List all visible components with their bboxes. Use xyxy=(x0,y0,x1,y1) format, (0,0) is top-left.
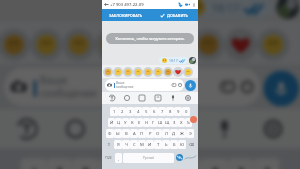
button[interactable]: Emoji xyxy=(127,28,160,61)
button[interactable]: 4 xyxy=(134,107,142,116)
button[interactable]: Back xyxy=(102,0,198,9)
button[interactable]: 2 xyxy=(118,107,126,116)
button[interactable]: Clipboard xyxy=(137,93,147,103)
button[interactable]: Э xyxy=(186,129,194,138)
button[interactable]: В xyxy=(122,129,130,138)
button[interactable]: 18:17 xyxy=(159,57,188,64)
button[interactable]: , xyxy=(115,153,122,163)
button[interactable]: ?123 xyxy=(103,153,114,163)
button[interactable]: 3 xyxy=(72,158,98,169)
button[interactable]: Voice input xyxy=(168,93,178,103)
button[interactable]: Emoji xyxy=(103,67,113,77)
button[interactable]: У xyxy=(122,118,129,127)
button[interactable]: Ф xyxy=(106,129,114,138)
button[interactable]: Коснитесь, чтобы загрузить историю. xyxy=(106,33,194,44)
button[interactable]: 8 xyxy=(202,158,228,169)
button[interactable]: ДОБАВИТЬ xyxy=(150,9,198,21)
button[interactable]: GIF xyxy=(160,113,192,145)
button[interactable]: Emoji xyxy=(133,67,143,77)
button[interactable]: Ч xyxy=(122,140,130,149)
button[interactable]: Д xyxy=(170,129,178,138)
button[interactable]: Voice message xyxy=(263,71,299,106)
button[interactable]: 2 xyxy=(46,158,72,169)
button[interactable]: Camera xyxy=(105,79,184,91)
button[interactable]: Emoji xyxy=(153,67,163,77)
button[interactable]: Г xyxy=(150,118,157,127)
button[interactable]: 6 xyxy=(150,107,158,116)
button[interactable]: Й xyxy=(108,118,115,127)
button[interactable]: 9 xyxy=(174,107,182,116)
button[interactable]: Settings xyxy=(183,93,193,103)
button[interactable]: Emoji xyxy=(0,28,30,61)
button[interactable]: 3 xyxy=(126,107,134,116)
button[interactable]: ЗАБЛОКИРОВАТЬ xyxy=(102,9,150,21)
button[interactable]: 8 xyxy=(166,107,174,116)
button[interactable]: Emoji xyxy=(183,67,193,77)
button[interactable]: Е xyxy=(136,118,143,127)
button[interactable]: 1 xyxy=(110,107,118,116)
button[interactable]: Ж xyxy=(178,129,186,138)
button[interactable]: Emoji xyxy=(123,67,133,77)
button[interactable]: 7 xyxy=(158,107,166,116)
button[interactable]: 4 xyxy=(98,158,124,169)
button[interactable]: Emoji xyxy=(95,28,127,61)
button[interactable]: ⌫ xyxy=(187,140,196,149)
button[interactable]: Emoji xyxy=(224,28,257,61)
button[interactable]: Х xyxy=(178,118,185,127)
button[interactable]: С xyxy=(130,140,138,149)
button[interactable]: 0 xyxy=(182,107,190,116)
button[interactable]: 5 xyxy=(142,107,150,116)
button[interactable]: Emoji xyxy=(160,28,192,61)
button[interactable]: Enter xyxy=(184,153,197,162)
button[interactable]: Stickers xyxy=(59,113,92,145)
button[interactable]: Camera xyxy=(4,67,260,106)
button[interactable]: Stickers xyxy=(122,93,132,103)
button[interactable]: Emoji xyxy=(173,67,183,77)
button[interactable]: Clipboard xyxy=(108,113,140,145)
button[interactable]: Translate xyxy=(11,113,43,145)
button[interactable]: Ш xyxy=(157,118,164,127)
button[interactable]: Н xyxy=(143,118,150,127)
button[interactable]: Emoji xyxy=(192,28,224,61)
button[interactable]: Ю xyxy=(178,140,186,149)
button[interactable]: Щ xyxy=(164,118,171,127)
button[interactable]: Р xyxy=(146,129,154,138)
button[interactable]: 7 xyxy=(176,158,202,169)
button[interactable]: Voice message xyxy=(185,80,196,91)
button[interactable]: Ь xyxy=(162,140,170,149)
button[interactable]: Т xyxy=(154,140,162,149)
button[interactable]: П xyxy=(138,129,146,138)
button[interactable]: М xyxy=(138,140,146,149)
button[interactable]: Emoji xyxy=(143,67,153,77)
button[interactable]: GIF xyxy=(153,93,163,103)
button[interactable]: 1 xyxy=(20,158,46,169)
button[interactable]: 9 xyxy=(228,158,254,169)
button[interactable]: Emoji xyxy=(30,28,62,61)
button[interactable]: Ц xyxy=(115,118,122,127)
button[interactable]: 5 xyxy=(124,158,150,169)
button[interactable]: 18:17 xyxy=(179,0,273,19)
button[interactable]: Voice input xyxy=(208,113,241,145)
button[interactable]: New xyxy=(190,116,197,123)
button[interactable]: Ъ xyxy=(185,118,192,127)
button[interactable]: 0 xyxy=(254,158,280,169)
button[interactable]: Emoji xyxy=(163,67,173,77)
button[interactable]: Русский xyxy=(123,153,174,163)
button[interactable]: ⇧ xyxy=(104,140,113,149)
button[interactable]: Voice search xyxy=(175,153,184,162)
button[interactable]: Emoji xyxy=(62,28,95,61)
button[interactable]: Ы xyxy=(114,129,122,138)
button[interactable]: Translate xyxy=(107,93,117,103)
button[interactable]: Settings xyxy=(257,113,289,145)
button[interactable]: И xyxy=(146,140,154,149)
button[interactable]: Emoji xyxy=(257,28,289,61)
button[interactable]: О xyxy=(154,129,162,138)
button[interactable]: Я xyxy=(114,140,122,149)
button[interactable]: З xyxy=(171,118,178,127)
button[interactable]: Л xyxy=(162,129,170,138)
button[interactable]: К xyxy=(129,118,136,127)
button[interactable]: Emoji xyxy=(113,67,123,77)
button[interactable]: Б xyxy=(170,140,178,149)
button[interactable]: 6 xyxy=(150,158,176,169)
button[interactable]: А xyxy=(130,129,138,138)
